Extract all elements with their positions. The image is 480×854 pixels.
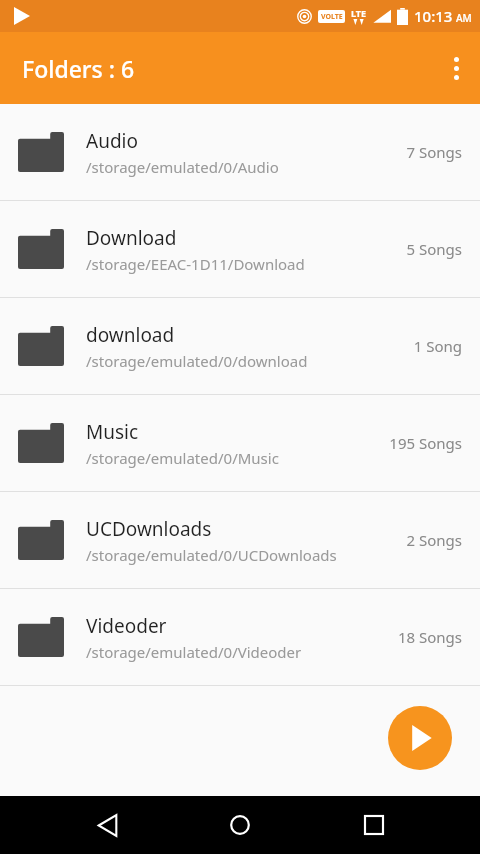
button[interactable]: Home [213, 798, 267, 852]
staticText: /storage/emulated/0/Music [86, 448, 279, 468]
staticText: LTE [351, 7, 367, 19]
staticText: /storage/emulated/0/UCDownloads [86, 545, 337, 565]
button[interactable]: Music [0, 395, 480, 491]
button[interactable]: Recents [347, 798, 401, 852]
button[interactable]: More options [432, 44, 480, 92]
staticText: 1 Song [413, 336, 462, 356]
button[interactable]: Audio [0, 104, 480, 200]
staticText: Audio [86, 128, 138, 154]
button[interactable]: Download [0, 201, 480, 297]
staticText: 5 Songs [406, 239, 462, 259]
staticText: 195 Songs [389, 433, 462, 453]
staticText: /storage/emulated/0/Audio [86, 157, 279, 177]
button[interactable]: Videoder [0, 589, 480, 685]
staticText: Folders : 6 [22, 53, 135, 84]
staticText: download [86, 322, 175, 348]
staticText: 2 Songs [406, 530, 462, 550]
staticText: 18 Songs [397, 627, 462, 647]
staticText: Music [86, 419, 139, 445]
button[interactable]: download [0, 298, 480, 394]
staticText: Videoder [86, 613, 167, 639]
staticText: Download [86, 225, 177, 251]
staticText: VOLTE [321, 12, 343, 22]
button[interactable]: Back [80, 798, 134, 852]
staticText: /storage/emulated/0/Videoder [86, 642, 302, 662]
staticText: UCDownloads [86, 516, 212, 542]
staticText: /storage/EEAC-1D11/Download [86, 254, 305, 274]
staticText: AM [456, 11, 472, 25]
button[interactable]: UCDownloads [0, 492, 480, 588]
staticText: 10:13 [414, 6, 453, 26]
staticText: /storage/emulated/0/download [86, 351, 308, 371]
staticText: 7 Songs [406, 142, 462, 162]
button[interactable]: Play [388, 706, 452, 770]
